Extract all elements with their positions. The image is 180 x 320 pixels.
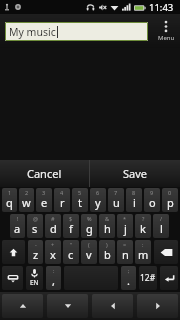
button[interactable]: 1 [2,188,17,212]
button[interactable]: 9 [144,188,160,212]
staticText: Menu [158,34,175,42]
staticText: 9 [150,189,154,196]
staticText: ; [128,267,130,274]
staticText: r [60,195,65,210]
button[interactable]: 8 [126,188,142,212]
button[interactable]: Shift [2,240,25,264]
staticText: ! [17,215,19,222]
button[interactable]: 5 [72,188,88,212]
staticText: Save [123,166,148,181]
button[interactable]: # [45,214,61,238]
staticText: = [123,241,127,248]
button[interactable]: / [153,214,169,238]
button[interactable]: ) [99,240,115,264]
staticText: : [53,267,55,274]
button[interactable]: ; [121,266,136,290]
staticText: @ [33,215,38,222]
button[interactable]: * [117,214,133,238]
button[interactable]: Space [64,266,118,290]
button[interactable]: Cancel [0,160,89,187]
staticText: u [113,195,120,210]
staticText: p [167,195,174,210]
staticText: 8 [132,189,136,196]
button[interactable]: Up [2,294,43,318]
staticText: & [105,215,110,222]
staticText: 11:43 [149,1,174,14]
button[interactable]: = [117,240,133,264]
button[interactable]: 4 [54,188,70,212]
staticText: e [41,195,48,210]
staticText: 2 [25,189,29,196]
button[interactable]: 2 [19,188,34,212]
staticText: EN [30,278,39,287]
staticText: / [160,215,163,222]
button[interactable]: : [46,266,61,290]
button[interactable]: Left [92,294,133,318]
staticText: h [104,221,111,236]
button[interactable]: ? [135,214,151,238]
staticText: 4 [60,189,64,196]
button[interactable]: & [99,214,115,238]
staticText: % [87,215,92,222]
staticText: b [104,247,111,262]
staticText: w [22,195,31,210]
button[interactable]: @ [27,214,43,238]
staticText: l [160,221,163,236]
staticText: 0 [168,189,172,196]
staticText: - [35,241,37,248]
staticText: z [33,247,39,262]
button[interactable]: Voice input [26,266,43,290]
staticText: v [86,247,92,262]
staticText: , [52,273,55,288]
button[interactable]: Menu [152,14,180,48]
button[interactable]: Down [47,294,88,318]
staticText: 7 [114,189,118,196]
button[interactable]: Hide keyboard [2,266,23,290]
staticText: g [86,221,93,236]
staticText: k [140,221,146,236]
staticText: t [78,195,82,210]
button[interactable]: Save [90,160,180,187]
staticText: a [14,221,21,236]
staticText: Cancel [27,166,62,181]
button[interactable]: My music [5,22,148,41]
button[interactable]: ( [81,240,97,264]
staticText: d [50,221,57,236]
staticText: y [95,195,101,210]
button[interactable]: Right [137,294,178,318]
button[interactable]: + [45,240,61,264]
staticText: 6 [96,189,100,196]
button[interactable]: 7 [108,188,124,212]
button[interactable]: ! [10,214,25,238]
staticText: + [51,241,55,248]
staticText: 5 [78,189,82,196]
button[interactable]: Backspace [154,240,178,264]
staticText: 12# [140,272,156,284]
button[interactable]: 0 [162,188,178,212]
button[interactable]: Numbers and symbols [139,266,157,290]
staticText: * [123,215,127,222]
button[interactable]: : [135,240,151,264]
staticText: ( [88,241,90,248]
staticText: s [32,221,38,236]
staticText: " [70,241,73,248]
button[interactable]: - [28,240,43,264]
button[interactable]: Enter [160,266,178,290]
button[interactable]: " [63,240,79,264]
staticText: 3 [42,189,46,196]
button[interactable]: % [81,214,97,238]
button[interactable]: 3 [36,188,52,212]
staticText: My music [9,25,56,39]
staticText: f [69,221,73,236]
button[interactable]: $ [63,214,79,238]
staticText: o [149,195,156,210]
staticText: j [124,221,127,236]
staticText: : [142,241,144,248]
button[interactable]: 6 [90,188,106,212]
staticText: 1 [8,189,12,196]
staticText: ) [106,241,108,248]
staticText: c [68,247,74,262]
staticText: q [6,195,13,210]
staticText: x [50,247,56,262]
staticText: ? [142,215,145,222]
